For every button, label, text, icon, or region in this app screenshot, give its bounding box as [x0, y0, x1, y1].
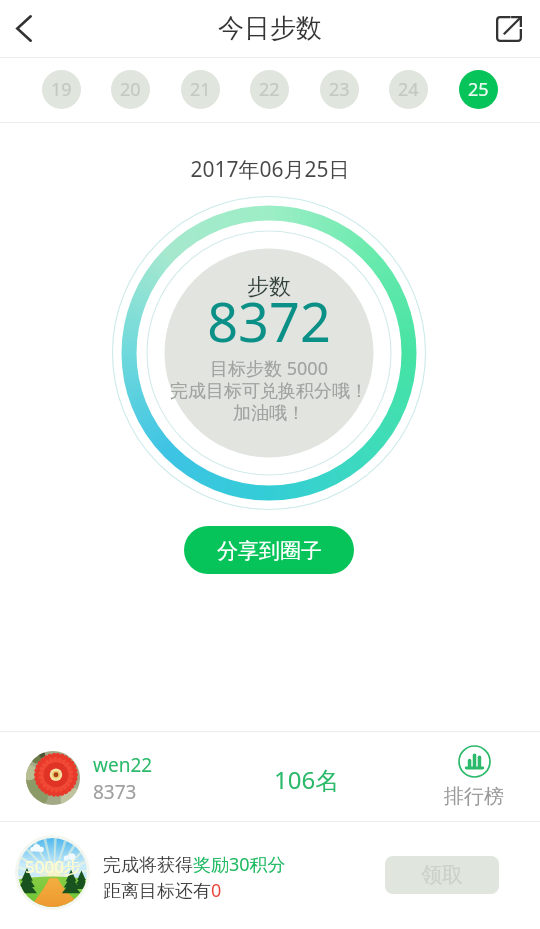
button[interactable]: 分享到圈子: [184, 526, 354, 574]
staticText: 21: [190, 77, 211, 102]
staticText: 8373: [93, 779, 137, 805]
staticText: 完成将获得奖励30积分: [103, 852, 286, 877]
button[interactable]: [0, 732, 540, 821]
staticText: wen22: [93, 752, 153, 778]
button[interactable]: Back: [0, 0, 53, 57]
staticText: 目标步数 5000 完成目标可兑换积分哦！ 加油哦！: [109, 356, 429, 425]
button[interactable]: 25: [459, 70, 498, 109]
button[interactable]: 领取: [385, 856, 499, 894]
button[interactable]: Share: [480, 0, 538, 57]
staticText: 8372: [109, 284, 429, 358]
staticText: 20: [120, 77, 141, 102]
staticText: 步数: [109, 273, 429, 301]
staticText: 5000步: [25, 855, 81, 878]
staticText: 22: [259, 77, 280, 102]
staticText: 25: [468, 77, 489, 102]
staticText: 分享到圈子: [217, 538, 322, 564]
button[interactable]: 22: [250, 70, 289, 109]
button[interactable]: 排行榜: [439, 745, 509, 809]
button[interactable]: 19: [42, 70, 81, 109]
staticText: 排行榜: [444, 784, 504, 809]
button[interactable]: 24: [389, 70, 428, 109]
staticText: 24: [398, 77, 419, 102]
staticText: 距离目标还有0: [103, 878, 222, 903]
button[interactable]: 21: [181, 70, 220, 109]
staticText: 领取: [421, 862, 463, 888]
staticText: 23: [329, 77, 350, 102]
button[interactable]: 23: [320, 70, 359, 109]
staticText: 106名: [274, 763, 340, 796]
button[interactable]: 20: [111, 70, 150, 109]
staticText: 19: [51, 77, 72, 102]
staticText: 2017年06月25日: [0, 155, 540, 184]
staticText: 今日步数: [0, 12, 540, 45]
